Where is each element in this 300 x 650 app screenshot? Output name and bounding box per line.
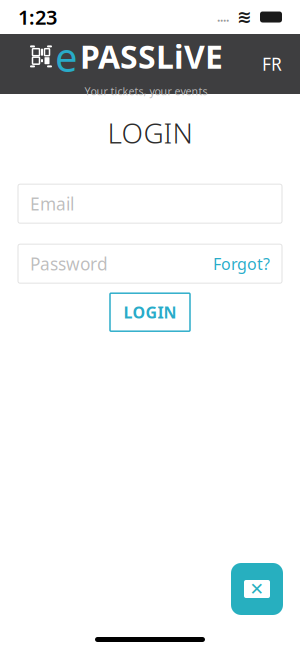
staticText: e [55, 30, 78, 83]
staticText: ≋ [237, 7, 252, 27]
staticText: LOGIN [107, 114, 192, 151]
staticText: LOGIN [123, 302, 176, 323]
staticText: 1:23 [18, 4, 57, 30]
button[interactable]: Forgot? [205, 247, 270, 280]
staticText: Your tickets, your events [84, 84, 207, 98]
button[interactable]: FR [252, 44, 292, 83]
staticText: Password [30, 252, 108, 275]
button[interactable]: Contact us by email [231, 563, 283, 615]
staticText: Forgot? [213, 253, 270, 274]
button[interactable]: LOGIN [110, 293, 190, 331]
staticText: FR [262, 52, 282, 75]
staticText: PASSLiVE [80, 35, 223, 78]
staticText: .... [217, 9, 229, 25]
staticText: Email [30, 192, 74, 215]
staticText: ✕ [249, 579, 264, 599]
